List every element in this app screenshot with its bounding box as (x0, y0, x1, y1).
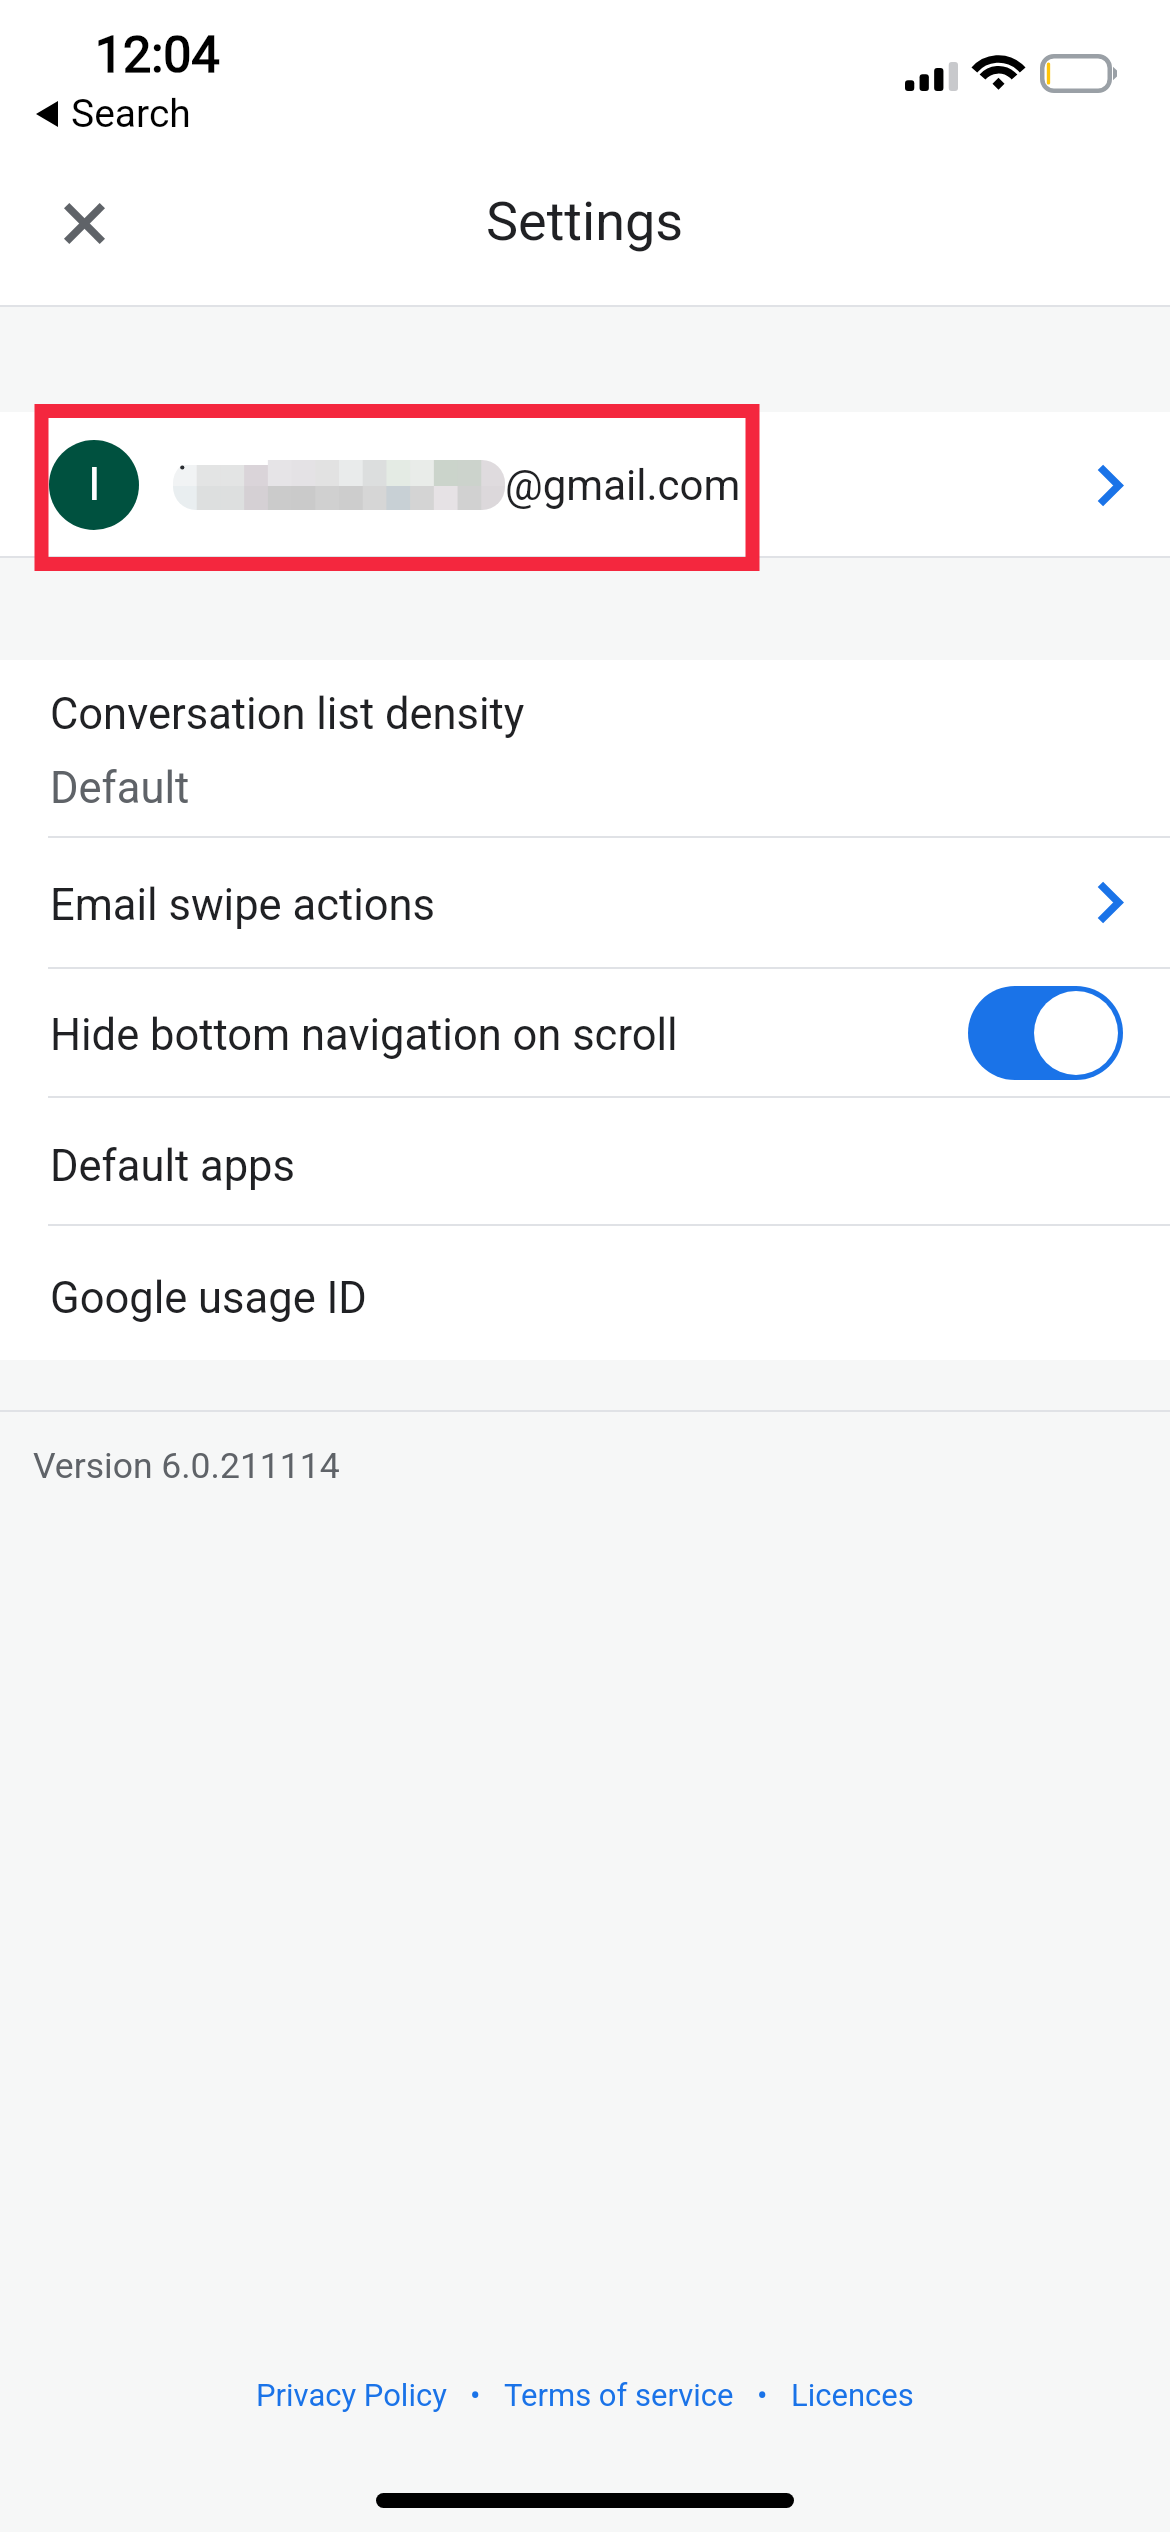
button[interactable]: Email swipe actions (0, 838, 1170, 967)
staticText: Email swipe actions (50, 880, 436, 931)
staticText: Settings (486, 190, 684, 253)
button[interactable]: Privacy Policy (256, 2377, 447, 2413)
button[interactable]: Hide bottom navigation on scroll (968, 986, 1123, 1080)
button[interactable]: Close (28, 167, 140, 279)
staticText: Conversation list density (50, 689, 525, 740)
staticText: I (88, 457, 101, 511)
staticText: Google usage ID (50, 1273, 367, 1324)
staticText: Default (50, 763, 190, 814)
button[interactable]: Hide bottom navigation on scroll (0, 969, 1170, 1096)
staticText: • (734, 2377, 791, 2413)
staticText: Search (71, 91, 191, 137)
staticText: Hide bottom navigation on scroll (50, 1010, 678, 1061)
staticText: @gmail.com (505, 461, 741, 510)
button[interactable]: Default apps (0, 1098, 1170, 1224)
button[interactable]: Google usage ID (0, 1226, 1170, 1359)
button[interactable]: Conversation list density (0, 660, 1170, 836)
button[interactable]: Terms of service (504, 2377, 734, 2413)
staticText: 12:04 (95, 26, 220, 85)
button[interactable]: Licences (791, 2377, 914, 2413)
staticText: Default apps (50, 1141, 295, 1192)
button[interactable]: I (0, 412, 1170, 558)
staticText: • (447, 2377, 504, 2413)
staticText: Version 6.0.211114 (33, 1445, 340, 1487)
